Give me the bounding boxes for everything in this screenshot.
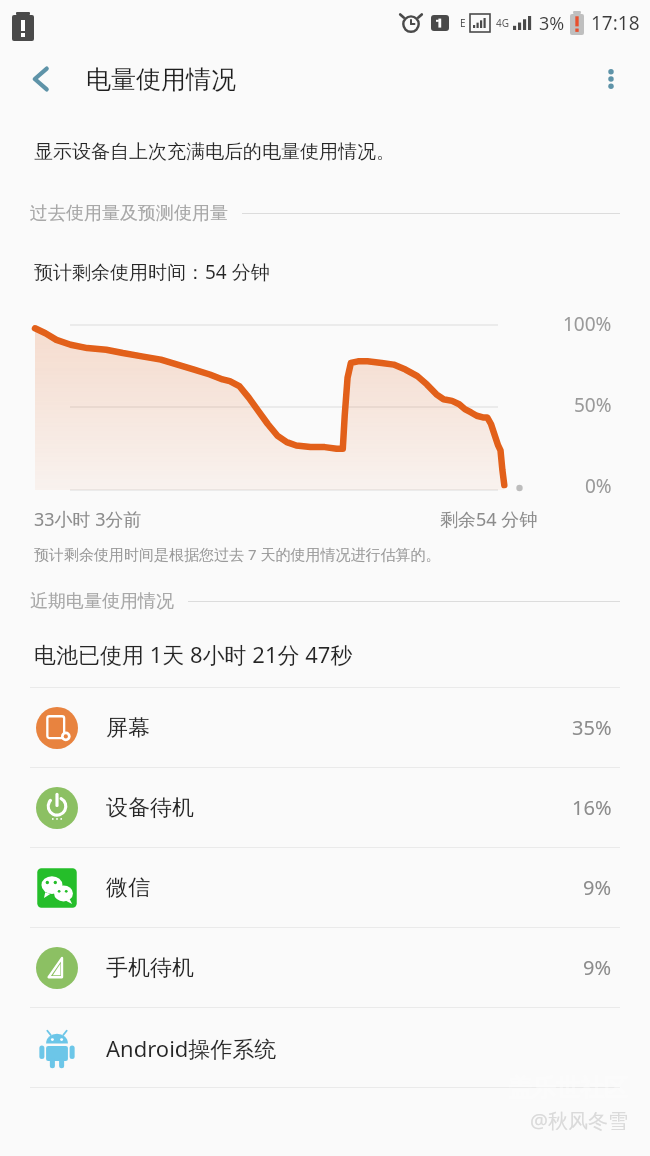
staticText: 手机待机 [106,954,194,982]
staticText: 设备待机 [106,794,194,822]
button[interactable]: More options [584,52,638,106]
staticText: 预计剩余使用时间：54 分钟 [34,259,270,285]
button[interactable]: 设备待机 [0,768,650,847]
staticText: 33小时 3分前 [34,507,142,532]
button[interactable]: Android操作系统 [0,1008,650,1087]
staticText: 电量使用情况 [86,64,236,95]
staticText: 微信 [106,874,150,902]
staticText: 50% [574,392,612,418]
staticText: 屏幕 [106,714,150,742]
staticText: 9% [583,874,612,901]
staticText: 电池已使用 1天 8小时 21分 47秒 [34,639,353,669]
staticText: E [460,16,466,30]
button[interactable]: Back [14,52,68,106]
staticText: 4G [496,16,509,30]
staticText: 16% [572,794,612,821]
staticText: 9% [583,954,612,981]
staticText: 17:18 [591,10,640,36]
staticText: 剩余54 分钟 [440,507,538,532]
staticText: 3% [539,11,565,36]
button[interactable]: 手机待机 [0,928,650,1007]
staticText: 近期电量使用情况 [30,590,174,613]
staticText: 显示设备自上次充满电后的电量使用情况。 [34,140,395,164]
staticText: @秋风冬雪 [530,1107,628,1134]
staticText: 过去使用量及预测使用量 [30,202,228,225]
staticText: 0% [585,473,612,499]
button[interactable]: 微信 [0,848,650,927]
staticText: 35% [572,714,612,741]
button[interactable]: 屏幕 [0,688,650,767]
staticText: Android操作系统 [106,1033,277,1063]
staticText: 预计剩余使用时间是根据您过去 7 天的使用情况进行估算的。 [34,544,441,564]
staticText: 100% [563,311,612,337]
